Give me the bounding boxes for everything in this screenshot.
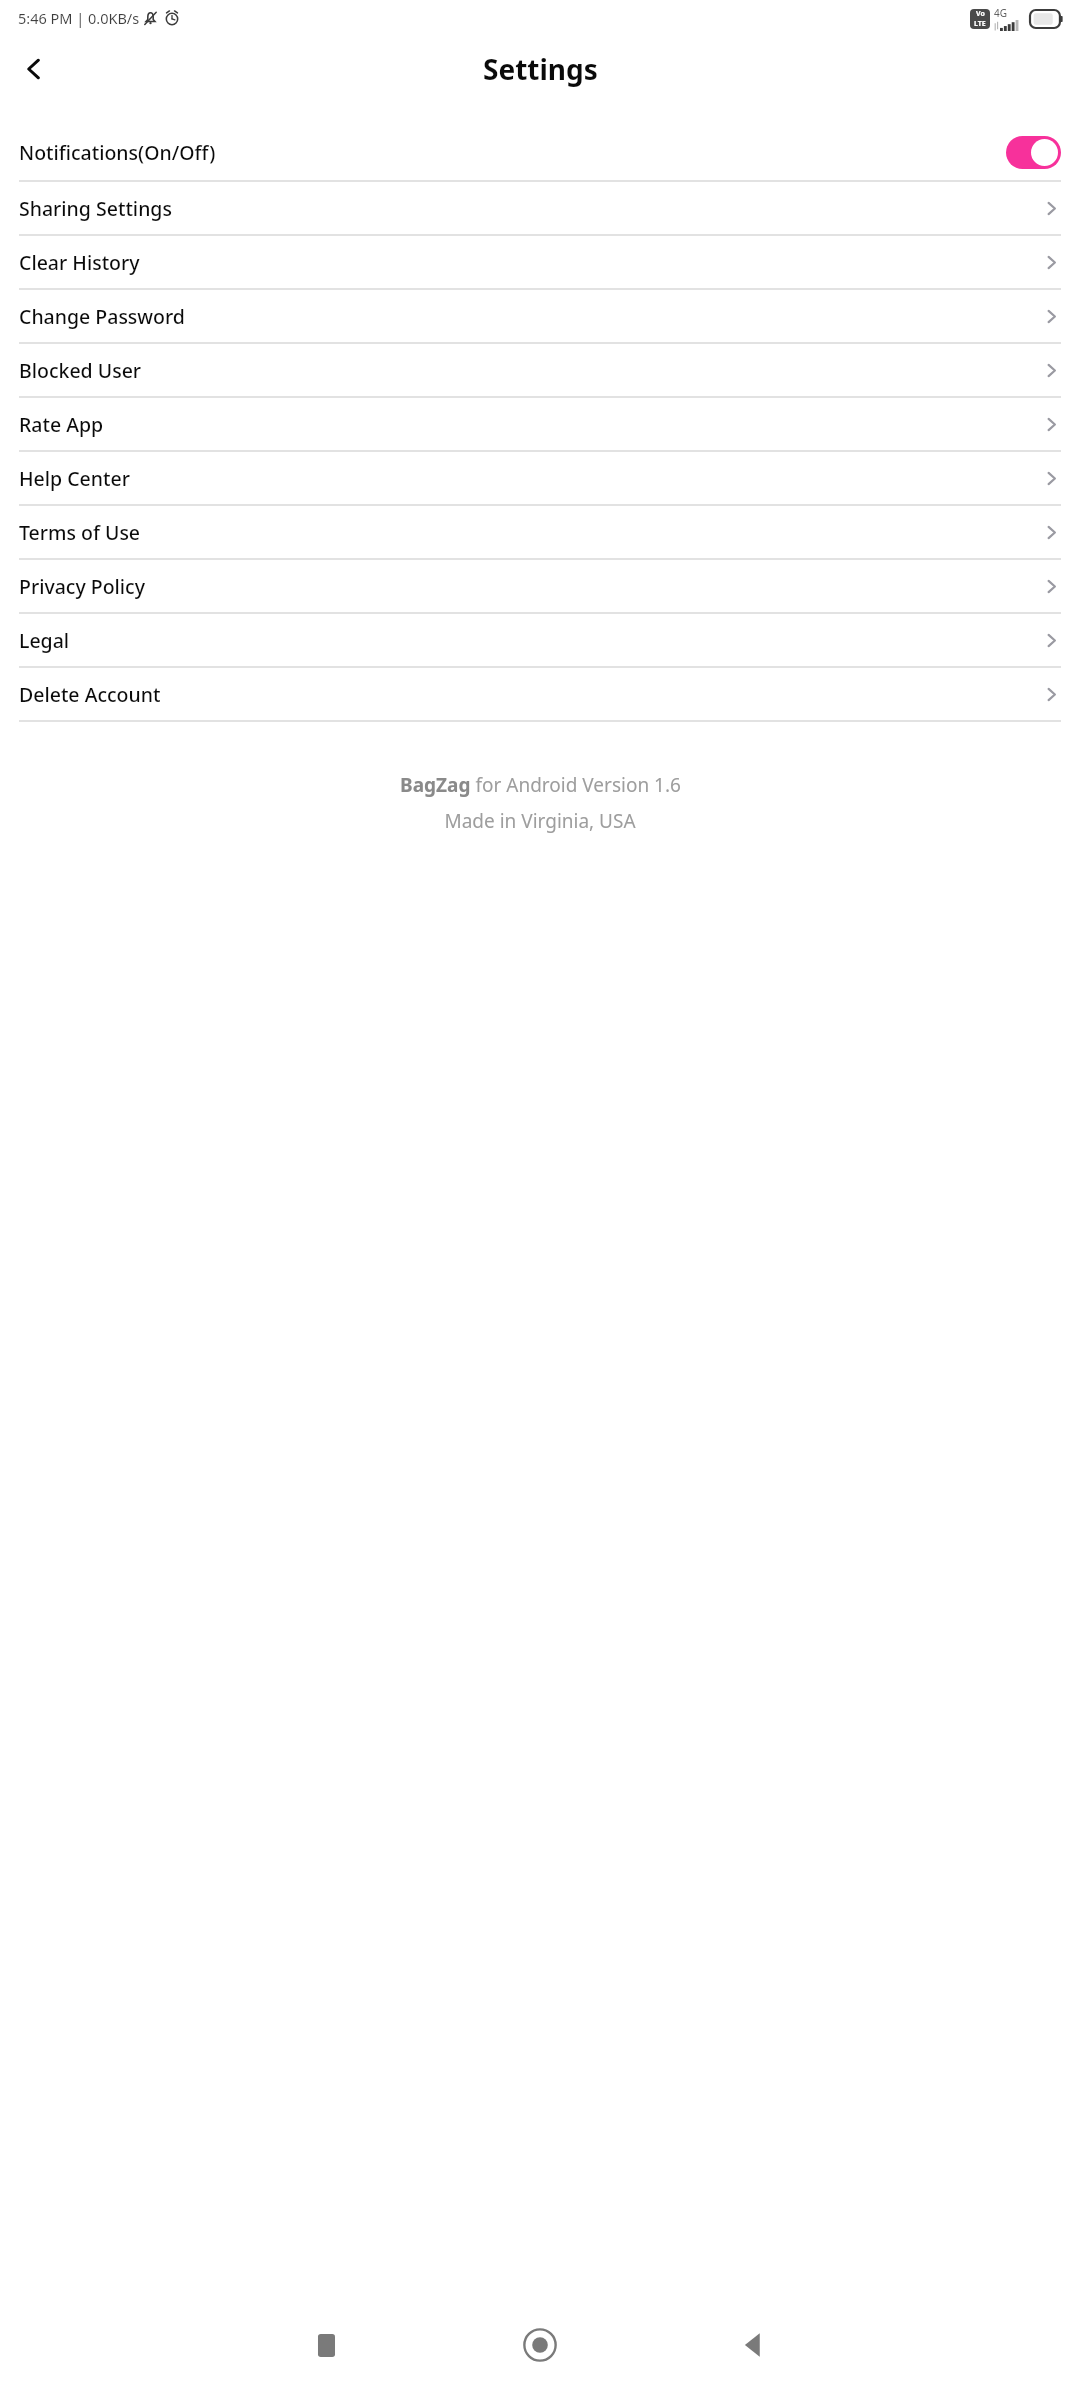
staticText: Sharing Settings [19,195,172,222]
staticText: Legal [19,627,70,654]
button[interactable]: Notifications toggle [1006,136,1061,169]
staticText: BagZag for Android Version 1.6 [400,772,681,798]
button[interactable]: Back [8,43,60,95]
button[interactable]: Home [504,2309,576,2381]
button[interactable]: Notifications(On/Off) [0,124,1080,180]
staticText: Notifications(On/Off) [19,139,216,166]
button[interactable]: Legal [0,614,1080,666]
staticText: Privacy Policy [19,573,145,600]
button[interactable]: Recents [290,2309,362,2381]
staticText: Blocked User [19,357,142,384]
staticText: LTE [974,19,986,29]
staticText: Change Password [19,303,185,330]
staticText: 5:46 PM | 0.0KB/s [18,8,140,28]
staticText: Help Center [19,465,130,492]
staticText: 4G [994,6,1007,20]
staticText: Clear History [19,249,140,276]
staticText: Vo [976,9,985,19]
button[interactable]: Change Password [0,290,1080,342]
button[interactable]: Help Center [0,452,1080,504]
button[interactable]: Clear History [0,236,1080,288]
staticText: Rate App [19,411,104,438]
button[interactable]: Delete Account [0,668,1080,720]
staticText: Settings [483,50,598,88]
button[interactable]: Rate App [0,398,1080,450]
button[interactable]: Privacy Policy [0,560,1080,612]
staticText: Terms of Use [19,519,141,546]
button[interactable]: Blocked User [0,344,1080,396]
staticText: Made in Virginia, USA [444,808,636,834]
button[interactable]: Terms of Use [0,506,1080,558]
staticText: Delete Account [19,681,161,708]
button[interactable]: Back [718,2309,790,2381]
button[interactable]: Sharing Settings [0,182,1080,234]
